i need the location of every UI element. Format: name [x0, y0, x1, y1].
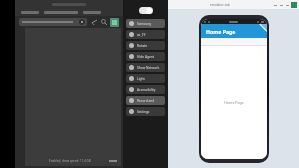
staticText: Rotate	[137, 44, 148, 48]
button[interactable]: Settings	[129, 107, 162, 116]
button[interactable]: Accessibility	[129, 85, 162, 94]
staticText: Home Page	[224, 100, 244, 105]
staticText: Record and Save	[137, 99, 162, 103]
button[interactable]: Samsung Galaxy S8	[129, 19, 162, 28]
button[interactable]: Back	[90, 18, 98, 26]
staticText: Accessibility	[137, 88, 156, 92]
button[interactable]: Clear	[19, 18, 87, 26]
staticText: Enabled, draw speed: 11.4 GB	[49, 159, 91, 163]
button[interactable]: Window control	[279, 3, 283, 7]
button[interactable]: ac_19	[129, 30, 162, 39]
staticText: Light	[137, 77, 145, 81]
button[interactable]: Clear	[79, 19, 85, 25]
staticText: Show Network	[137, 66, 160, 70]
button[interactable]: Window control	[285, 3, 289, 7]
button[interactable]: Window control	[273, 3, 277, 7]
button[interactable]	[83, 11, 101, 14]
staticText: Settings	[137, 110, 150, 114]
button[interactable]: Search	[100, 18, 108, 26]
staticText: ac_19	[137, 33, 146, 37]
button[interactable]: Toggle	[139, 7, 153, 14]
button[interactable]: Record and Save	[129, 96, 162, 105]
staticText: emulator-tab	[210, 3, 230, 7]
button[interactable]: Show Network	[129, 63, 162, 72]
button[interactable]: Hide Agent	[129, 52, 162, 61]
button[interactable]	[21, 11, 39, 14]
button[interactable]: Rotate	[129, 41, 162, 50]
button[interactable]: Run	[110, 18, 119, 27]
staticText: Home Page	[206, 28, 236, 35]
staticText: Samsung Galaxy S8	[137, 22, 162, 26]
button[interactable]: Light	[129, 74, 162, 83]
staticText: Hide Agent	[137, 55, 154, 59]
